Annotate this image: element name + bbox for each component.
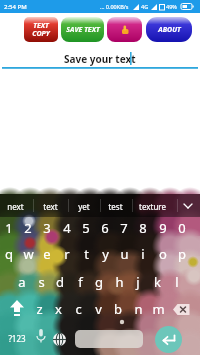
button[interactable]: s [28,273,54,291]
button[interactable]: v [85,300,111,318]
button[interactable]: f [67,273,93,291]
button[interactable]: texture [135,197,169,215]
staticText: u [120,245,129,263]
staticText: w [23,245,34,263]
staticText: g [95,273,103,291]
staticText: 49% [166,3,177,10]
staticText: 2 [24,219,32,237]
staticText: v [95,300,102,318]
button[interactable]: r [54,245,80,263]
button[interactable]: m [145,300,171,318]
staticText: 1 [5,219,13,237]
button[interactable]: yet [71,197,97,215]
staticText: SAVE TEXT [66,25,100,35]
staticText: n [134,300,143,318]
button[interactable] [52,332,67,347]
button[interactable]: 1 [0,219,22,237]
staticText: m [152,300,165,318]
staticText: s [38,273,45,291]
staticText: 3 [43,219,51,237]
button[interactable]: e [34,245,60,263]
button[interactable]: p [169,245,195,263]
button[interactable]: 3 [34,219,60,237]
staticText: texture [139,201,166,212]
staticText: Save your text [64,52,136,66]
button[interactable]: l [164,273,190,291]
button[interactable] [75,330,143,348]
button[interactable]: ?123 [2,329,32,347]
button[interactable]: k [144,273,170,291]
button[interactable]: j [125,273,151,291]
button[interactable]: 8 [130,219,156,237]
button[interactable] [107,17,142,42]
button[interactable]: 5 [73,219,99,237]
button[interactable]: h [106,273,132,291]
staticText: text [43,201,58,212]
staticText: t [84,245,89,263]
staticText: f [78,273,83,291]
button[interactable] [155,326,182,353]
button[interactable]: x [45,300,71,318]
staticText: ?123 [8,333,26,344]
staticText: 7 [120,219,128,237]
staticText: 9 [159,219,167,237]
staticText: 2:54 PM [4,3,27,11]
button[interactable]: i [130,245,156,263]
button[interactable]: 7 [111,219,137,237]
staticText: l [175,273,179,291]
button[interactable]: o [150,245,176,263]
staticText: y [102,245,109,263]
button[interactable]: a [9,273,35,291]
button[interactable]: d [47,273,73,291]
button[interactable]: SAVE TEXT [61,17,104,42]
staticText: 0 [178,219,186,237]
staticText: d [56,273,64,291]
button[interactable]: text [37,197,63,215]
staticText: r [64,245,70,263]
button[interactable]: 2 [15,219,41,237]
staticText: ... 0.00KB/s [100,3,129,10]
button[interactable]: n [125,300,151,318]
button[interactable]: 4 [54,219,80,237]
button[interactable] [172,303,191,316]
staticText: ABOUT [158,25,181,35]
staticText: q [5,245,13,263]
button[interactable] [6,299,28,319]
staticText: z [36,300,43,318]
staticText: 5 [82,219,90,237]
button[interactable]: ABOUT [146,17,192,42]
button[interactable] [34,328,48,348]
staticText: h [115,273,124,291]
button[interactable]: c [65,300,91,318]
staticText: yet [78,201,90,212]
button[interactable]: q [0,245,22,263]
button[interactable]: y [92,245,118,263]
staticText: e [43,245,51,263]
button[interactable]: 6 [92,219,118,237]
button[interactable]: 9 [150,219,176,237]
button[interactable]: t [73,245,99,263]
button[interactable]: z [26,300,52,318]
staticText: b [114,300,122,318]
staticText: next [7,201,24,212]
staticText: o [159,245,167,263]
button[interactable]: 0 [169,219,195,237]
staticText: 8 [139,219,147,237]
staticText: test [108,201,123,212]
button[interactable]: g [86,273,112,291]
staticText: p [178,245,186,263]
button[interactable]: test [102,197,128,215]
button[interactable]: TEXT COPY [24,17,58,42]
button[interactable]: b [105,300,131,318]
staticText: x [55,300,62,318]
staticText: 4G [141,3,149,10]
staticText: 6 [101,219,109,237]
staticText: TEXT COPY [32,21,50,38]
button[interactable]: Save your text [0,50,200,68]
staticText: c [75,300,82,318]
button[interactable]: u [111,245,137,263]
staticText: 4 [63,219,71,237]
staticText: a [18,273,26,291]
button[interactable]: w [15,245,41,263]
button[interactable]: next [2,197,28,215]
